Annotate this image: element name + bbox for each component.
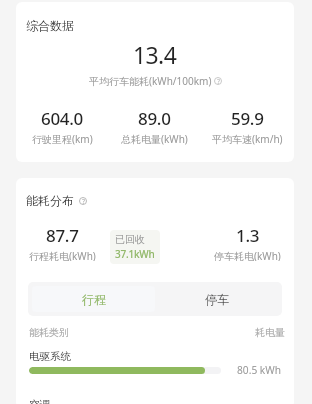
- button[interactable]: 停车: [155, 286, 278, 312]
- staticText: 1.3: [236, 224, 260, 247]
- staticText: 行程: [82, 292, 106, 307]
- staticText: ?: [217, 77, 220, 85]
- staticText: 综合数据: [26, 18, 74, 33]
- staticText: 80.5 kWh: [237, 363, 282, 377]
- staticText: 已回收: [115, 233, 145, 246]
- staticText: 89.0: [138, 107, 171, 130]
- staticText: 能耗类别: [29, 326, 69, 339]
- staticText: 空调: [29, 398, 50, 404]
- staticText: 604.0: [41, 107, 84, 130]
- staticText: 37.1kWh: [115, 247, 155, 261]
- staticText: 行驶里程(km): [32, 132, 93, 146]
- staticText: 59.9: [231, 107, 264, 130]
- staticText: 平均行车能耗(kWh/100km): [89, 74, 212, 88]
- staticText: 13.4: [133, 39, 177, 70]
- staticText: 能耗分布: [26, 193, 74, 208]
- staticText: 总耗电量(kWh): [121, 132, 188, 146]
- button[interactable]: 行程: [32, 286, 155, 312]
- staticText: 耗电量: [255, 326, 285, 339]
- staticText: 87.7: [46, 224, 79, 247]
- staticText: 行程耗电(kWh): [29, 249, 96, 261]
- other: 说明: [79, 197, 87, 205]
- other: 说明: [214, 77, 222, 85]
- staticText: 平均车速(km/h): [212, 132, 283, 146]
- staticText: 停车: [205, 292, 229, 307]
- staticText: 停车耗电(kWh): [214, 249, 281, 261]
- staticText: ?: [82, 197, 85, 205]
- staticText: 电驱系统: [29, 350, 71, 363]
